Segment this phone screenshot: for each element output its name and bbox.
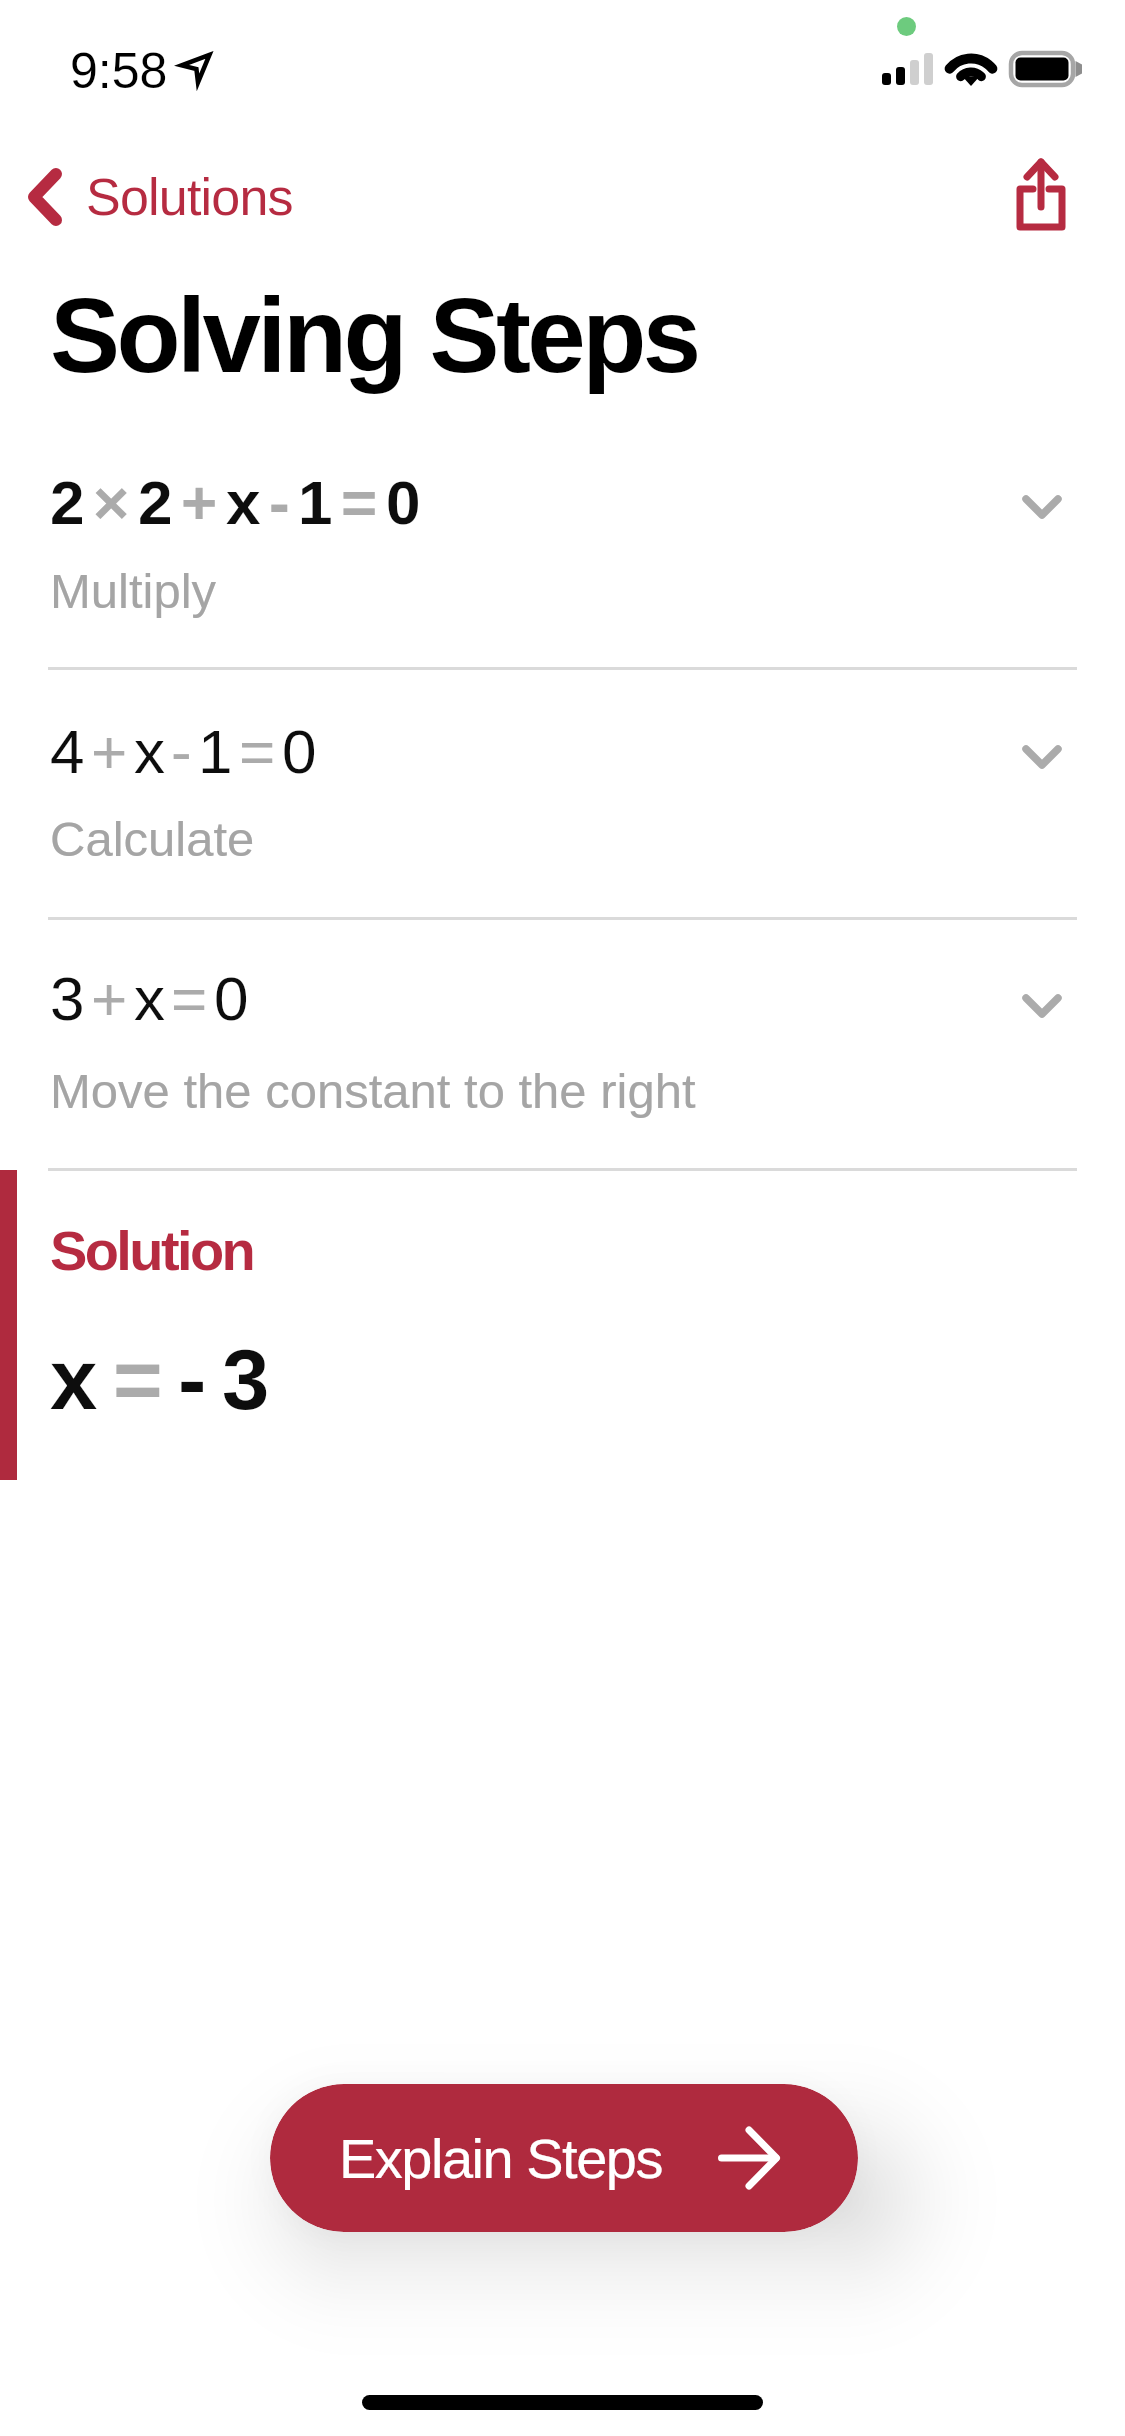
button[interactable]: Expand step 1 — [994, 459, 1090, 555]
staticText: 4 — [50, 717, 85, 786]
staticText: + — [91, 717, 128, 786]
button[interactable]: Share — [1012, 155, 1070, 235]
button[interactable]: Step 3: 3 plus x equals 0, Move the cons… — [0, 940, 1125, 1168]
staticText: Explain Steps — [339, 2127, 662, 2190]
button[interactable]: Explain Steps — [270, 2084, 858, 2232]
button[interactable]: Expand step 3 — [994, 958, 1090, 1054]
staticText: Move the constant to the right — [50, 1064, 696, 1119]
staticText: x — [226, 468, 261, 537]
staticText: 0 — [214, 964, 249, 1033]
staticText: × — [93, 468, 130, 537]
staticText: Solution — [50, 1219, 254, 1282]
button[interactable]: Step 2: 4 plus x minus 1 equals 0, Calcu… — [0, 690, 1125, 917]
staticText: + — [91, 964, 128, 1033]
button[interactable]: Solutions — [22, 159, 293, 235]
staticText: 9:58 — [70, 43, 168, 99]
staticText: Solving Steps — [50, 277, 698, 394]
staticText: + — [181, 468, 218, 537]
staticText: 2 — [138, 468, 173, 537]
staticText: 1 — [198, 717, 233, 786]
staticText: Solutions — [86, 168, 293, 226]
staticText: 3 — [50, 964, 85, 1033]
staticText: 0 — [282, 717, 317, 786]
staticText: - — [178, 1332, 207, 1427]
staticText: 0 — [386, 468, 421, 537]
staticText: 3 — [222, 1332, 270, 1427]
staticText: 2 — [50, 468, 85, 537]
button[interactable]: Step 1: 2 times 2 plus x minus 1 equals … — [0, 440, 1125, 668]
staticText: x — [134, 964, 165, 1033]
staticText: = — [171, 964, 208, 1033]
staticText: - — [171, 717, 192, 786]
staticText: = — [113, 1332, 163, 1427]
staticText: 1 — [298, 468, 333, 537]
staticText: Calculate — [50, 812, 255, 867]
staticText: x — [134, 717, 165, 786]
staticText: = — [341, 468, 378, 537]
staticText: - — [269, 468, 290, 537]
staticText: = — [239, 717, 276, 786]
button[interactable]: Expand step 2 — [994, 709, 1090, 805]
staticText: x — [50, 1332, 98, 1427]
staticText: Multiply — [50, 564, 217, 619]
